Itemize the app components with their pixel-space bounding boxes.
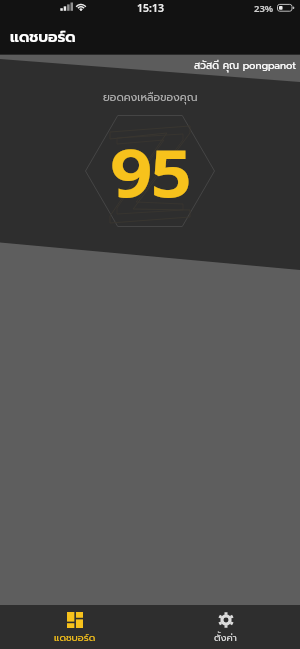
staticText: สวัสดี คุณ pongpanot xyxy=(194,58,296,73)
staticText: ยอดคงเหลือของคุณ xyxy=(103,89,198,105)
staticText: ตั้งค่า xyxy=(214,630,237,645)
staticText: 23% xyxy=(254,2,274,15)
staticText: แดชบอร์ด xyxy=(10,26,76,49)
staticText: 15:13 xyxy=(137,1,164,15)
staticText: แดชบอร์ด xyxy=(54,630,96,645)
staticText: 95 xyxy=(110,124,191,225)
button[interactable]: ตั้งค่า xyxy=(150,605,300,649)
button[interactable]: แดชบอร์ด xyxy=(0,605,150,649)
